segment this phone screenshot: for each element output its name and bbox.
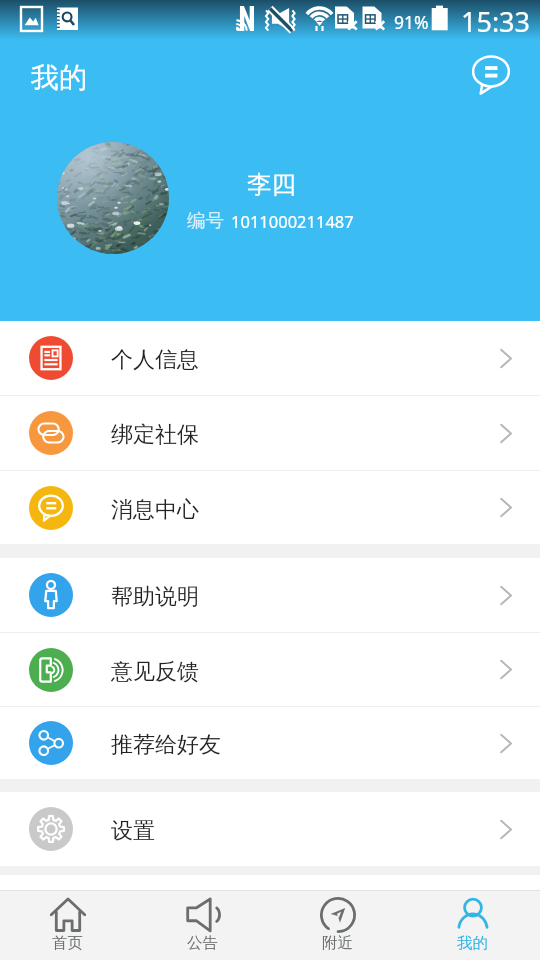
button[interactable]: 公告 bbox=[135, 891, 270, 960]
staticText: 绑定社保 bbox=[111, 421, 199, 449]
button[interactable]: 帮助说明 bbox=[0, 558, 540, 632]
staticText: 1011000211487 bbox=[231, 210, 354, 232]
button[interactable]: Avatar bbox=[57, 142, 169, 254]
staticText: 个人信息 bbox=[111, 346, 199, 374]
staticText: 15:33 bbox=[461, 3, 531, 40]
button[interactable]: 附近 bbox=[270, 891, 405, 960]
staticText: 推荐给好友 bbox=[111, 731, 221, 759]
staticText: 意见反馈 bbox=[111, 658, 199, 686]
button[interactable]: 推荐给好友 bbox=[0, 707, 540, 779]
button[interactable]: 绑定社保 bbox=[0, 396, 540, 470]
button[interactable]: 我的 bbox=[405, 891, 540, 960]
staticText: 编号 bbox=[187, 209, 224, 232]
staticText: 消息中心 bbox=[111, 496, 199, 524]
staticText: 91% bbox=[394, 10, 429, 34]
staticText: 设置 bbox=[111, 817, 155, 845]
staticText: 附近 bbox=[322, 933, 353, 953]
button[interactable] bbox=[0, 128, 540, 268]
button[interactable]: 个人信息 bbox=[0, 321, 540, 395]
staticText: 我的 bbox=[457, 933, 488, 953]
staticText: 帮助说明 bbox=[111, 583, 199, 611]
staticText: 公告 bbox=[187, 933, 218, 953]
button[interactable]: Messages bbox=[466, 50, 516, 100]
button[interactable]: 首页 bbox=[0, 891, 135, 960]
button[interactable]: 意见反馈 bbox=[0, 633, 540, 706]
staticText: 首页 bbox=[52, 933, 83, 953]
staticText: 李四 bbox=[247, 169, 296, 200]
button[interactable]: 设置 bbox=[0, 792, 540, 866]
staticText: 我的 bbox=[31, 60, 87, 95]
button[interactable]: 消息中心 bbox=[0, 471, 540, 544]
